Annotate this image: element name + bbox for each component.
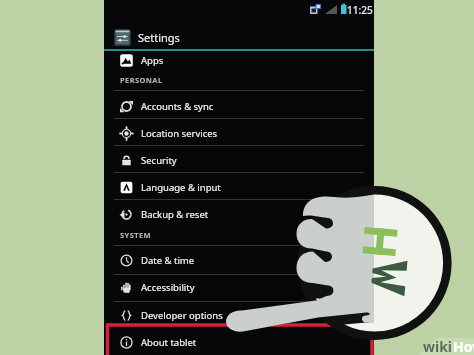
button[interactable]: Accessibility — [104, 274, 374, 300]
button[interactable]: Settings — [104, 26, 374, 48]
staticText: How — [453, 337, 474, 355]
button[interactable]: Backup & reset — [104, 201, 374, 227]
staticText: wiki — [423, 337, 453, 355]
staticText: Developer options — [141, 309, 223, 322]
staticText: Apps — [141, 54, 164, 67]
button[interactable]: About tablet — [104, 329, 374, 355]
button[interactable]: Apps — [104, 47, 374, 73]
staticText: Accessibility — [141, 281, 195, 294]
button[interactable]: Location services — [104, 120, 374, 146]
staticText: Settings — [138, 30, 180, 45]
staticText: Backup & reset — [141, 208, 209, 221]
button[interactable]: Accounts & sync — [104, 93, 374, 119]
button[interactable]: Language & input — [104, 174, 374, 200]
staticText: About tablet — [141, 336, 197, 349]
button[interactable]: Date & time — [104, 247, 374, 273]
staticText: Language & input — [141, 181, 221, 194]
staticText: Date & time — [141, 254, 195, 267]
staticText: Location services — [141, 127, 218, 140]
staticText: 11:25 — [347, 3, 373, 17]
staticText: Accounts & sync — [141, 100, 214, 113]
staticText: SYSTEM — [120, 230, 151, 240]
button[interactable]: Security — [104, 147, 374, 173]
button[interactable]: Developer options — [104, 302, 374, 328]
staticText: PERSONAL — [120, 75, 163, 85]
staticText: Security — [141, 154, 177, 167]
